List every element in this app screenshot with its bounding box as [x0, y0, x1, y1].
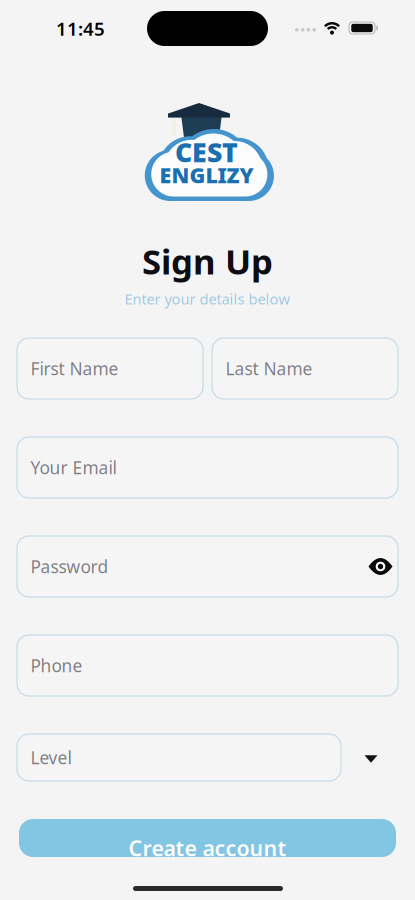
staticText: Enter your details below: [124, 289, 290, 308]
staticText: Password: [30, 555, 108, 578]
button[interactable]: Last Name: [212, 338, 398, 399]
staticText: Create account: [128, 834, 286, 862]
staticText: Phone: [30, 654, 82, 677]
button[interactable]: Choose level: [355, 743, 387, 775]
staticText: First Name: [30, 357, 118, 380]
button[interactable]: Level: [17, 734, 341, 781]
button[interactable]: First Name: [17, 338, 203, 399]
button[interactable]: Phone: [17, 635, 398, 696]
button[interactable]: Create account: [19, 819, 396, 857]
staticText: Level: [30, 746, 71, 769]
button[interactable]: Your Email: [17, 437, 398, 498]
staticText: ENGLIZY: [159, 161, 253, 189]
staticText: CEST: [175, 134, 238, 170]
staticText: 11:45: [56, 16, 105, 41]
staticText: Your Email: [30, 456, 116, 479]
staticText: Last Name: [225, 357, 312, 380]
button[interactable]: Password: [17, 536, 398, 597]
staticText: Sign Up: [142, 238, 273, 284]
